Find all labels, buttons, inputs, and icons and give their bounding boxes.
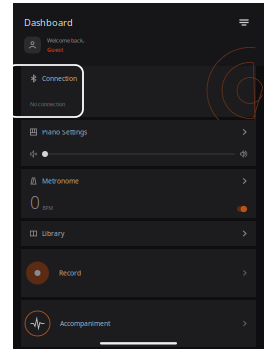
button[interactable]: Menu: [235, 15, 253, 30]
staticText: 0: [30, 190, 40, 214]
staticText: Metronome: [42, 176, 79, 186]
staticText: BPM: [42, 205, 52, 211]
button[interactable]: Connection: [21, 66, 256, 117]
button[interactable]: Start metronome: [236, 204, 247, 214]
staticText: Welcome back,: [47, 37, 85, 44]
button[interactable]: Welcome back,: [24, 34, 253, 56]
staticText: Guest: [47, 46, 63, 53]
staticText: Record: [59, 268, 81, 278]
button[interactable]: Record: [21, 249, 256, 297]
staticText: Accompaniment: [60, 319, 110, 328]
button[interactable]: Library: [21, 221, 256, 246]
button[interactable]: Accompaniment: [21, 300, 256, 347]
button[interactable]: Piano Settings: [21, 120, 256, 144]
staticText: Dashboard: [24, 16, 73, 29]
staticText: Library: [42, 229, 64, 238]
staticText: No connection: [30, 100, 65, 108]
staticText: Piano Settings: [42, 127, 87, 137]
button[interactable]: Metronome: [21, 169, 256, 193]
staticText: Connection: [42, 74, 77, 83]
